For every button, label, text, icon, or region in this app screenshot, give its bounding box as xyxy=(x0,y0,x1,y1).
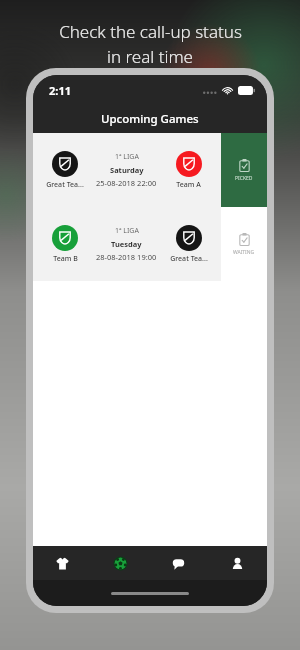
staticText: Tuesday xyxy=(111,239,142,249)
staticText: Great Tea... xyxy=(46,180,84,190)
staticText: 25-08-2018 22:00 xyxy=(96,178,157,188)
button[interactable]: Chat xyxy=(149,546,208,580)
button[interactable]: Waiting xyxy=(221,207,267,281)
staticText: Upcoming Games xyxy=(101,111,199,127)
staticText: Great Tea... xyxy=(170,254,208,264)
staticText: 1ª LIGA xyxy=(115,152,139,162)
button[interactable]: Profile xyxy=(208,546,267,580)
staticText: Saturday xyxy=(110,165,144,175)
staticText: Team A xyxy=(176,180,201,190)
staticText: 2:11 xyxy=(49,83,71,98)
button[interactable]: Teams xyxy=(33,546,91,580)
staticText: 28-08-2018 19:00 xyxy=(96,252,157,262)
staticText: PICKED xyxy=(235,175,253,182)
button[interactable]: Games xyxy=(91,546,149,580)
staticText: Check the call-up status xyxy=(59,20,242,43)
staticText: WAITING xyxy=(233,249,255,256)
button[interactable]: Great Tea... xyxy=(33,133,221,207)
staticText: 1ª LIGA xyxy=(115,226,139,236)
button[interactable]: Picked xyxy=(221,133,267,207)
staticText: in real time xyxy=(107,45,193,68)
staticText: Team B xyxy=(53,254,78,264)
button[interactable]: Team B xyxy=(33,207,221,281)
